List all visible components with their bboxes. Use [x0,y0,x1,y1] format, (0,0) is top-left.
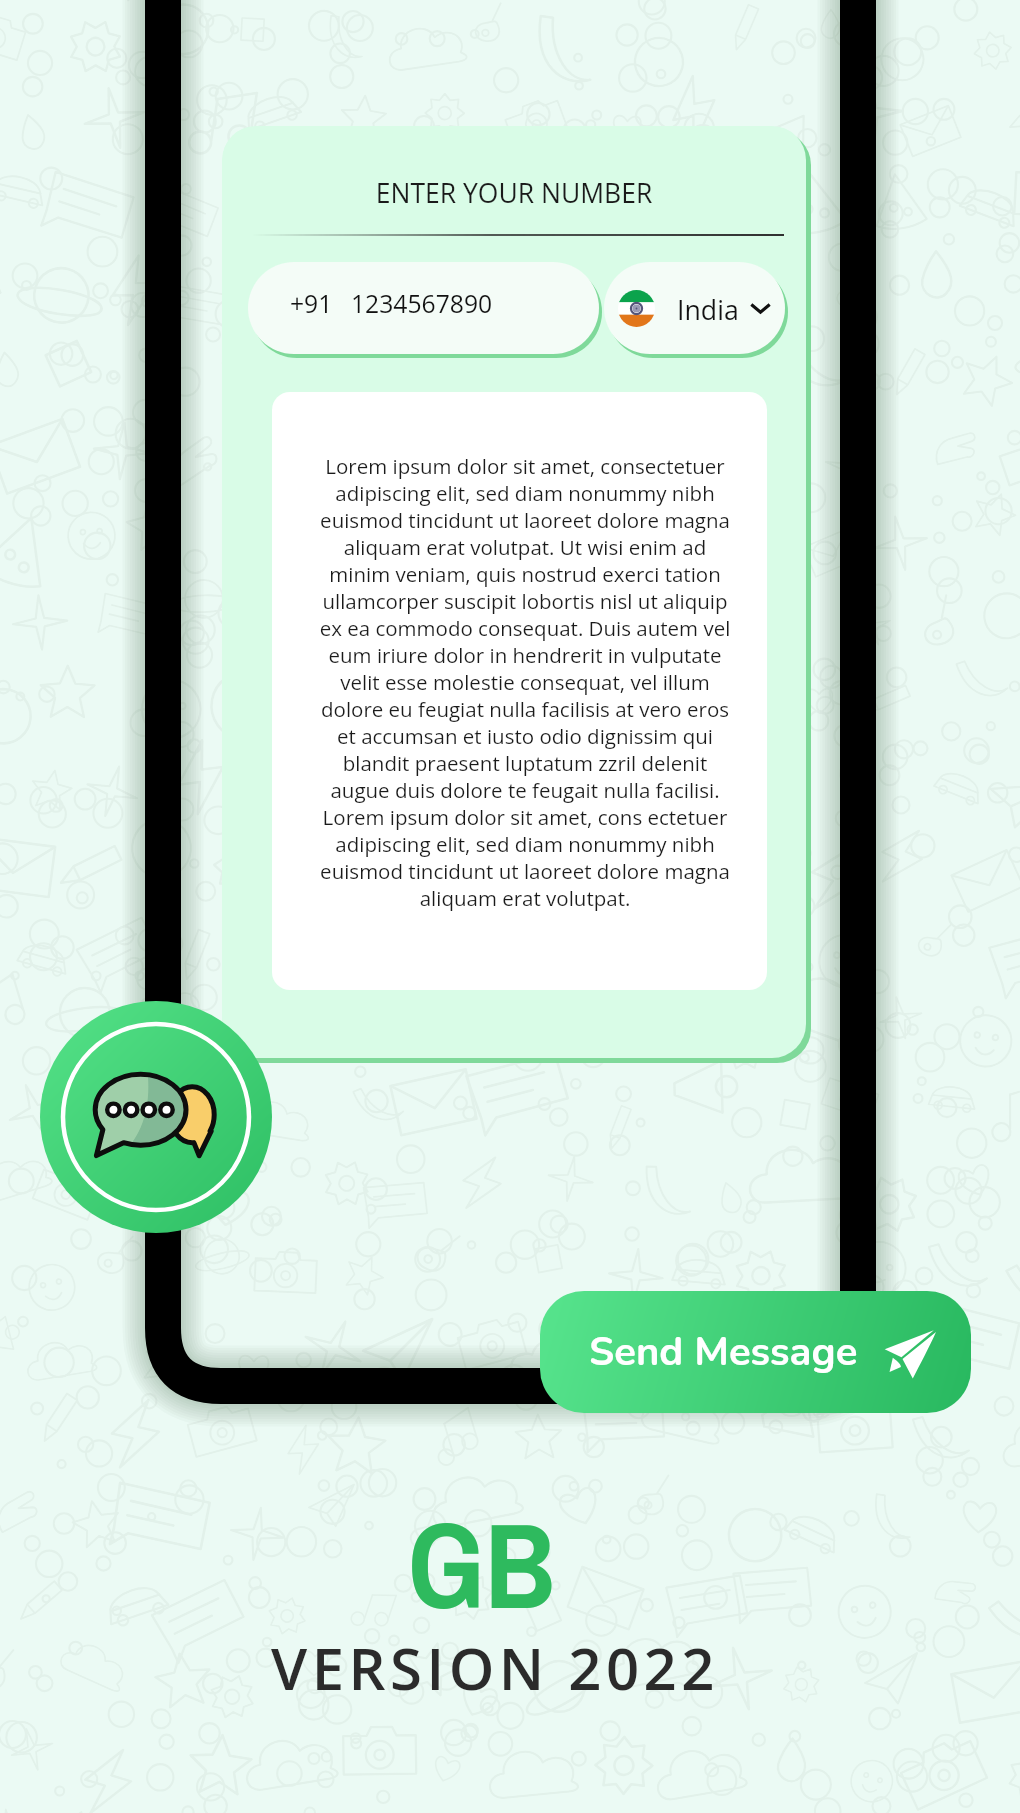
button[interactable]: Chat [40,1001,272,1233]
button[interactable]: +91 [248,262,599,354]
staticText: India [677,291,739,327]
staticText: GB [408,1484,556,1646]
staticText: Lorem ipsum dolor sit amet, consectetuer… [318,452,732,912]
staticText: ENTER YOUR NUMBER [222,175,806,211]
staticText: VERSION 2022 [271,1628,719,1707]
staticText: Send Message [589,1325,858,1380]
staticText: +91 [290,287,333,321]
button[interactable]: Select country: India [604,262,785,354]
button[interactable]: Send Message [540,1291,971,1413]
staticText: 1234567890 [351,287,493,321]
